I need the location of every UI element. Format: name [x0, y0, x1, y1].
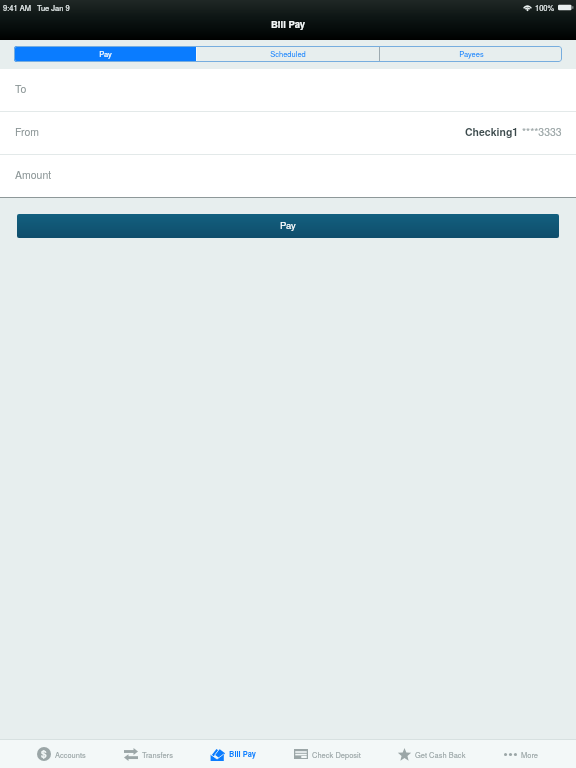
- button[interactable]: To: [0, 69, 576, 111]
- other: Battery full: [558, 4, 573, 11]
- button[interactable]: Pay: [14, 46, 196, 62]
- staticText: Bill Pay: [271, 17, 306, 31]
- button[interactable]: From: [0, 112, 576, 154]
- button[interactable]: $: [37, 740, 86, 768]
- button[interactable]: More: [504, 740, 539, 768]
- other: More: [504, 752, 517, 757]
- staticText: Pay: [99, 48, 112, 59]
- staticText: ****3333: [522, 124, 562, 139]
- staticText: Tue Jan 9: [37, 2, 70, 13]
- button[interactable]: Get Cash Back: [398, 740, 466, 768]
- staticText: Transfers: [142, 749, 173, 760]
- staticText: Check Deposit: [312, 749, 361, 760]
- staticText: Get Cash Back: [415, 749, 466, 760]
- button[interactable]: Scheduled: [197, 46, 379, 62]
- staticText: Payees: [459, 48, 484, 59]
- staticText: 9:41 AM: [3, 2, 31, 13]
- staticText: $: [41, 747, 47, 761]
- button[interactable]: Transfers: [124, 740, 173, 768]
- button[interactable]: Bill Pay: [210, 740, 256, 768]
- button[interactable]: Amount: [0, 155, 576, 197]
- staticText: Accounts: [55, 749, 86, 760]
- staticText: Checking1: [465, 124, 519, 139]
- staticText: 100%: [535, 2, 555, 13]
- staticText: Amount: [15, 167, 52, 182]
- staticText: To: [15, 81, 27, 96]
- button[interactable]: Check Deposit: [294, 740, 361, 768]
- staticText: Pay: [280, 218, 296, 232]
- button[interactable]: Payees: [380, 46, 562, 62]
- staticText: More: [521, 749, 539, 760]
- staticText: From: [15, 124, 40, 139]
- staticText: Scheduled: [270, 48, 306, 59]
- staticText: Bill Pay: [229, 749, 256, 760]
- other: Wi-Fi: [523, 4, 532, 11]
- button[interactable]: Pay: [17, 214, 559, 238]
